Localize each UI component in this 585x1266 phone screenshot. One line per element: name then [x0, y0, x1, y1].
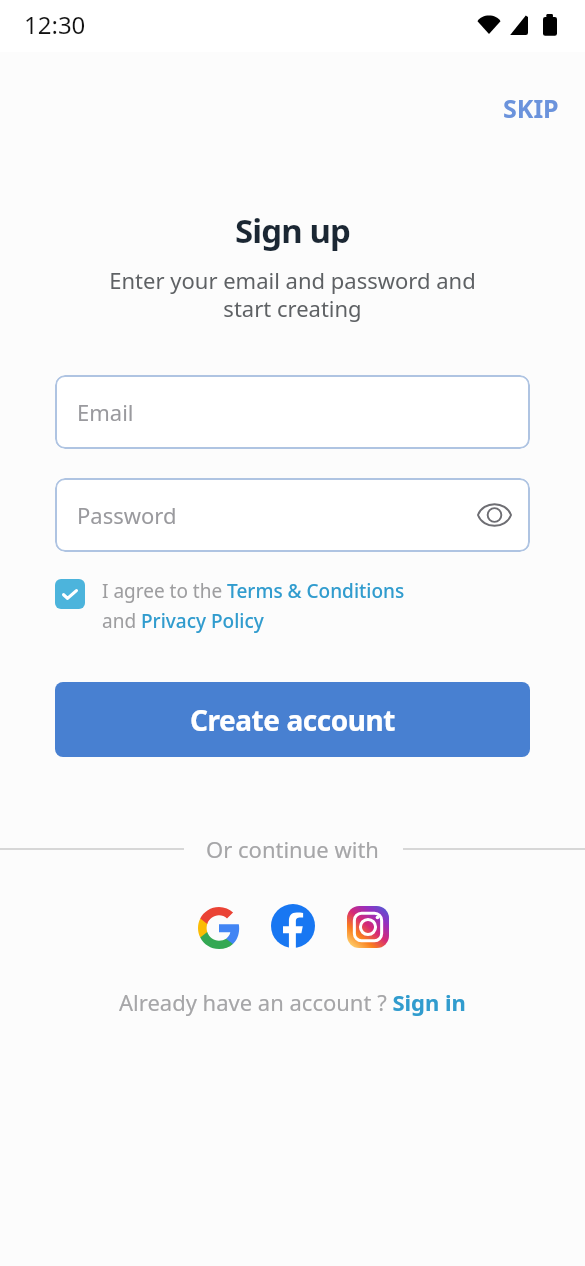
staticText: SKIP: [503, 91, 559, 125]
button[interactable]: Sign up with Facebook: [267, 900, 318, 951]
staticText: Already have an account ? Sign in: [119, 987, 466, 1017]
staticText: 12:30: [24, 8, 86, 41]
button[interactable]: Email: [55, 375, 530, 449]
staticText: Create account: [190, 701, 395, 739]
staticText: I agree to the Terms & Conditions and Pr…: [102, 578, 405, 633]
button[interactable]: Already have an account ? Sign in: [115, 983, 470, 1021]
button[interactable]: Sign up with Instagram: [342, 901, 393, 952]
staticText: Enter your email and password and start …: [0, 265, 585, 323]
staticText: Sign up: [0, 208, 585, 253]
button[interactable]: I agree to the Terms & Conditions and Pr…: [102, 578, 432, 633]
button[interactable]: Sign up with Google: [193, 902, 244, 953]
button[interactable]: SKIP: [488, 82, 574, 134]
button[interactable]: Show password: [472, 493, 516, 537]
button[interactable]: Password: [55, 478, 530, 552]
button[interactable]: Create account: [55, 682, 530, 757]
staticText: Password: [77, 500, 177, 530]
button[interactable]: Agree to terms and conditions: [55, 579, 85, 609]
staticText: Or continue with: [0, 834, 585, 864]
staticText: Email: [77, 397, 134, 427]
